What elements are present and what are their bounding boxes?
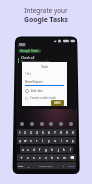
button[interactable]: 7 [52, 129, 58, 136]
button[interactable]: 4 [34, 129, 40, 136]
staticText: Integrate your [0, 6, 92, 15]
staticText: . [63, 164, 64, 168]
button[interactable]: q [17, 137, 22, 144]
button[interactable]: g [43, 146, 49, 153]
button[interactable]: 5 [40, 129, 46, 136]
button[interactable]: Period [60, 162, 67, 169]
staticText: k [63, 148, 65, 152]
button[interactable]: 0 [70, 129, 76, 136]
staticText: e [30, 139, 32, 143]
staticText: o [66, 139, 68, 143]
staticText: 8 [60, 131, 62, 135]
button[interactable]: w [22, 137, 28, 144]
button[interactable]: Create another task [25, 96, 56, 100]
staticText: p [72, 139, 74, 143]
button[interactable]: k [61, 146, 67, 153]
staticText: y [48, 139, 50, 143]
button[interactable]: Add date [25, 89, 43, 93]
button[interactable]: t [40, 137, 46, 144]
button[interactable]: e [28, 137, 34, 144]
button[interactable]: ?123 [17, 162, 25, 169]
staticText: w [24, 139, 27, 143]
button[interactable]: n [55, 154, 61, 161]
staticText: 2 [24, 131, 26, 135]
button[interactable]: English (US) [32, 162, 60, 169]
button[interactable]: Shift [17, 154, 25, 161]
staticText: z [27, 156, 29, 160]
button[interactable]: s [25, 146, 31, 153]
staticText: Google Tasks [0, 15, 92, 24]
staticText: m [63, 156, 66, 160]
button[interactable]: Check all [18, 56, 51, 64]
button[interactable]: a [20, 146, 25, 153]
staticText: ?123 [18, 164, 24, 167]
button[interactable]: Google Tasks [20, 49, 39, 53]
button[interactable]: 2 [22, 129, 28, 136]
button[interactable]: o [64, 137, 70, 144]
staticText: 0 [72, 131, 74, 135]
button[interactable]: p [70, 137, 76, 144]
staticText: Add date [31, 89, 43, 93]
button[interactable]: GIF [29, 121, 35, 127]
button[interactable]: v [43, 154, 49, 161]
staticText: English (US) [39, 164, 53, 167]
staticText: Check all [21, 56, 35, 60]
staticText: 4 [36, 131, 38, 135]
staticText: c [39, 156, 41, 160]
staticText: h [51, 148, 53, 152]
button[interactable]: SAVE [54, 101, 61, 105]
button[interactable]: l [67, 146, 73, 153]
staticText: Done [68, 164, 75, 167]
staticText: Google Tasks [20, 49, 39, 53]
staticText: FINI [19, 43, 25, 47]
staticText: 7 [54, 131, 56, 135]
staticText: n [57, 156, 59, 160]
staticText: i [61, 139, 62, 143]
button[interactable]: y [46, 137, 52, 144]
button[interactable]: 1 [17, 129, 22, 136]
button[interactable]: Enter [67, 162, 76, 169]
staticText: SAVE [54, 101, 61, 105]
staticText: v [45, 156, 47, 160]
button[interactable]: z [25, 154, 31, 161]
button[interactable]: FINI [19, 43, 25, 47]
button[interactable]: b [49, 154, 55, 161]
staticText: 9 [66, 131, 68, 135]
staticText: b [51, 156, 53, 160]
staticText: Task [22, 64, 67, 69]
button[interactable]: c [37, 154, 43, 161]
button[interactable]: Settings [68, 121, 74, 127]
staticText: l [70, 148, 71, 152]
button[interactable]: 3 [28, 129, 34, 136]
staticText: g [45, 148, 47, 152]
staticText: 5 [42, 131, 44, 135]
staticText: 1 [19, 131, 21, 135]
button[interactable]: x [31, 154, 37, 161]
button[interactable]: 8 [58, 129, 64, 136]
button[interactable]: Translate [58, 121, 64, 127]
staticText: r [36, 139, 38, 143]
staticText: Create another task [30, 96, 56, 100]
button[interactable]: h [49, 146, 55, 153]
button[interactable]: f [37, 146, 43, 153]
button[interactable]: Clipboard [48, 121, 54, 127]
staticText: j [58, 148, 59, 152]
staticText: u [54, 139, 56, 143]
staticText: , [28, 164, 29, 168]
button[interactable]: m [61, 154, 67, 161]
staticText: Research/Approve tasks [21, 60, 51, 64]
button[interactable]: Emoji [19, 121, 25, 127]
staticText: 3 [30, 131, 32, 135]
button[interactable]: j [55, 146, 61, 153]
button[interactable]: u [52, 137, 58, 144]
button[interactable]: 6 [46, 129, 52, 136]
button[interactable]: Emoji [25, 162, 32, 169]
button[interactable]: d [31, 146, 37, 153]
button[interactable]: Sticker [39, 121, 45, 127]
staticText: a [22, 148, 24, 152]
button[interactable]: r [34, 137, 40, 144]
button[interactable]: Backspace [67, 154, 76, 161]
button[interactable]: i [58, 137, 64, 144]
button[interactable]: 9 [64, 129, 70, 136]
staticText: New Report [25, 80, 43, 84]
